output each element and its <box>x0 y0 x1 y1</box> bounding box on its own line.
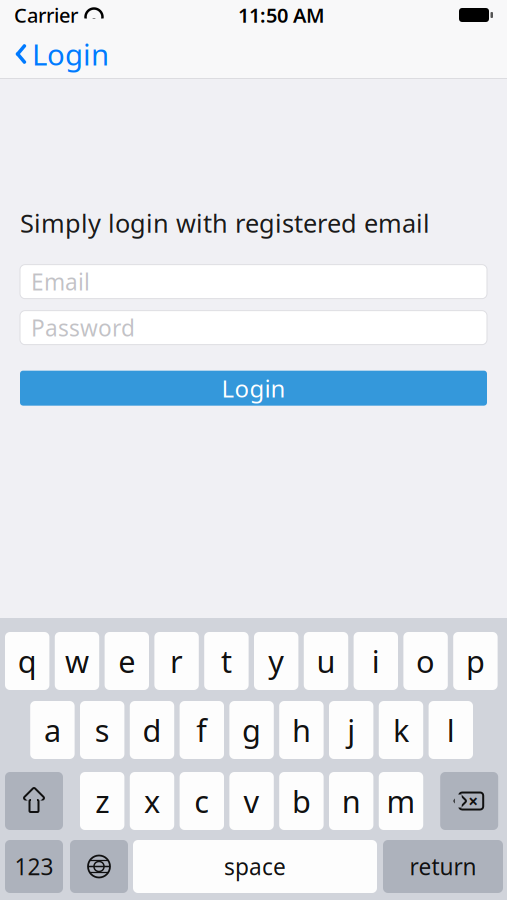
staticText: 11:50 AM <box>238 2 325 28</box>
button[interactable]: z <box>80 772 124 830</box>
button[interactable]: x <box>130 772 174 830</box>
button[interactable]: space <box>133 840 377 893</box>
button[interactable]: f <box>180 701 224 759</box>
staticText: j <box>347 710 355 750</box>
staticText: space <box>224 851 286 881</box>
staticText: h <box>292 710 311 750</box>
staticText: f <box>196 710 207 750</box>
button[interactable]: p <box>453 632 498 690</box>
button[interactable]: w <box>55 632 99 690</box>
button[interactable]: e <box>105 632 149 690</box>
staticText: r <box>170 641 183 681</box>
button[interactable]: u <box>304 632 348 690</box>
staticText: b <box>292 781 311 821</box>
button[interactable]: g <box>229 701 274 759</box>
staticText: Login <box>32 34 109 73</box>
staticText: × <box>468 789 478 812</box>
button[interactable]: c <box>180 772 224 830</box>
button[interactable]: y <box>254 632 298 690</box>
button[interactable]: v <box>229 772 274 830</box>
staticText: y <box>268 641 284 681</box>
staticText: k <box>393 710 409 750</box>
staticText: return <box>409 851 476 881</box>
staticText: u <box>316 641 335 681</box>
staticText: l <box>447 710 455 750</box>
button[interactable]: Login <box>20 371 487 406</box>
staticText: e <box>118 641 135 681</box>
staticText: d <box>142 710 161 750</box>
button[interactable]: i <box>354 632 398 690</box>
button[interactable]: k <box>379 701 423 759</box>
staticText: Carrier <box>14 2 78 28</box>
button[interactable]: o <box>403 632 448 690</box>
button[interactable]: 123 <box>5 840 63 893</box>
staticText: x <box>144 781 160 821</box>
button[interactable]: h <box>279 701 324 759</box>
button[interactable]: b <box>279 772 324 830</box>
staticText: Password <box>31 313 135 343</box>
button[interactable]: return <box>383 840 503 893</box>
staticText: p <box>466 641 485 681</box>
staticText: s <box>95 710 110 750</box>
staticText: q <box>18 641 37 681</box>
button[interactable]: r <box>154 632 199 690</box>
staticText: z <box>95 781 109 821</box>
button[interactable]: d <box>130 701 174 759</box>
staticText: m <box>386 781 415 821</box>
button[interactable]: Login <box>0 30 119 78</box>
staticText: t <box>221 641 232 681</box>
button[interactable]: q <box>5 632 49 690</box>
button[interactable]: Shift <box>5 772 63 830</box>
staticText: Simply login with registered email <box>20 206 430 240</box>
staticText: i <box>372 641 380 681</box>
button[interactable]: j <box>329 701 373 759</box>
button[interactable]: n <box>329 772 373 830</box>
button[interactable]: m <box>379 772 423 830</box>
staticText: a <box>44 710 61 750</box>
button[interactable]: s <box>80 701 124 759</box>
button[interactable]: Next keyboard <box>70 840 128 893</box>
staticText: v <box>244 781 260 821</box>
button[interactable]: a <box>30 701 75 759</box>
staticText: n <box>342 781 361 821</box>
staticText: o <box>416 641 435 681</box>
button[interactable]: Delete <box>440 772 498 830</box>
staticText: c <box>194 781 209 821</box>
staticText: Login <box>221 372 285 404</box>
button[interactable]: l <box>429 701 473 759</box>
staticText: g <box>242 710 261 750</box>
staticText: w <box>65 641 89 681</box>
staticText: 123 <box>14 851 53 881</box>
button[interactable]: t <box>204 632 249 690</box>
staticText: Email <box>31 267 90 297</box>
